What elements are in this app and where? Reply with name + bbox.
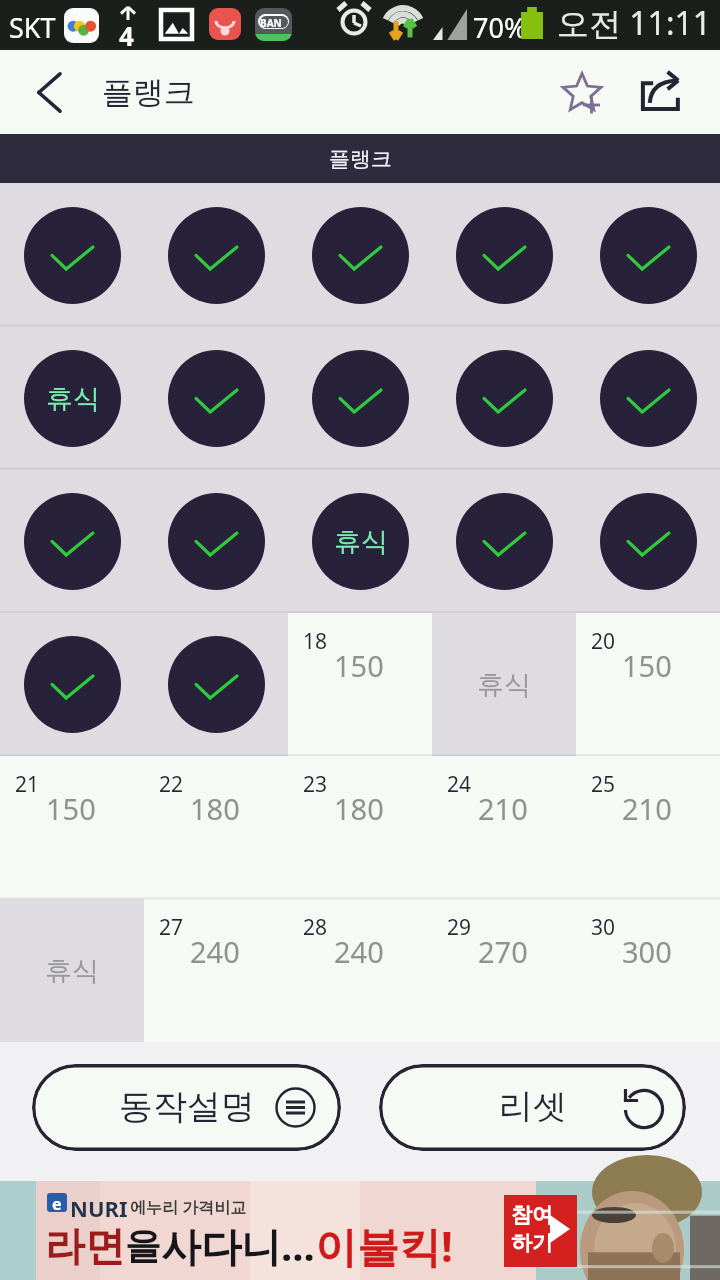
staticText: 휴식 bbox=[477, 668, 531, 702]
button[interactable] bbox=[0, 183, 144, 327]
staticText: 리셋 bbox=[499, 1085, 567, 1128]
staticText: 180 bbox=[190, 789, 240, 828]
button[interactable]: 30 bbox=[576, 899, 720, 1042]
staticText: 휴식 bbox=[46, 382, 100, 416]
button[interactable] bbox=[432, 183, 576, 327]
button[interactable] bbox=[144, 613, 288, 756]
staticText: 300 bbox=[622, 932, 672, 971]
staticText: 70% bbox=[473, 9, 527, 46]
button[interactable]: 동작설명 bbox=[32, 1064, 341, 1151]
staticText: 25 bbox=[591, 770, 616, 799]
staticText: 휴식 bbox=[45, 954, 99, 988]
staticText: 18 bbox=[303, 627, 328, 656]
staticText: 22 bbox=[159, 770, 184, 799]
button[interactable] bbox=[0, 470, 144, 613]
button[interactable]: 휴식 bbox=[288, 470, 432, 613]
staticText: 플랭크 bbox=[102, 73, 195, 112]
staticText: 을 bbox=[125, 1223, 161, 1268]
staticText: NURI bbox=[70, 1193, 128, 1223]
staticText: 라면 bbox=[45, 1221, 125, 1271]
staticText: BAND bbox=[260, 16, 288, 28]
staticText: 27 bbox=[159, 913, 184, 942]
staticText: 270 bbox=[478, 932, 528, 971]
button[interactable] bbox=[144, 470, 288, 613]
button[interactable]: 23 bbox=[288, 756, 432, 899]
button[interactable]: Share bbox=[627, 50, 693, 134]
staticText: 21 bbox=[15, 770, 40, 799]
staticText: e bbox=[52, 1193, 62, 1212]
staticText: 플랭크 bbox=[329, 146, 392, 172]
button[interactable] bbox=[576, 327, 720, 470]
button[interactable]: 24 bbox=[432, 756, 576, 899]
button[interactable]: 22 bbox=[144, 756, 288, 899]
staticText: SKT bbox=[9, 9, 56, 46]
button[interactable]: 리셋 bbox=[379, 1064, 686, 1151]
staticText: 4 bbox=[119, 18, 134, 53]
staticText: 휴식 bbox=[334, 525, 388, 559]
button[interactable]: 휴식 bbox=[432, 613, 576, 756]
staticText: 24 bbox=[447, 770, 472, 799]
button[interactable]: 27 bbox=[144, 899, 288, 1042]
staticText: 180 bbox=[334, 789, 384, 828]
button[interactable]: 28 bbox=[288, 899, 432, 1042]
staticText: 참여 하기 bbox=[511, 1202, 553, 1256]
button[interactable]: Add to favorites bbox=[549, 50, 615, 134]
button[interactable]: 29 bbox=[432, 899, 576, 1042]
staticText: 20 bbox=[591, 627, 616, 656]
button[interactable] bbox=[432, 327, 576, 470]
button[interactable] bbox=[0, 613, 144, 756]
button[interactable] bbox=[432, 470, 576, 613]
staticText: 동작설명 bbox=[119, 1085, 255, 1128]
staticText: 150 bbox=[622, 646, 672, 685]
staticText: 210 bbox=[622, 789, 672, 828]
button[interactable]: Back bbox=[4, 50, 92, 134]
button[interactable]: 휴식 bbox=[0, 899, 144, 1042]
button[interactable]: 18 bbox=[288, 613, 432, 756]
button[interactable] bbox=[144, 183, 288, 327]
staticText: 150 bbox=[334, 646, 384, 685]
staticText: 29 bbox=[447, 913, 472, 942]
button[interactable]: 휴식 bbox=[0, 327, 144, 470]
staticText: 이불킥! bbox=[315, 1217, 453, 1274]
staticText: 240 bbox=[334, 932, 384, 971]
button[interactable]: 20 bbox=[576, 613, 720, 756]
button[interactable] bbox=[288, 327, 432, 470]
staticText: 28 bbox=[303, 913, 328, 942]
button[interactable] bbox=[144, 327, 288, 470]
button[interactable]: 21 bbox=[0, 756, 144, 899]
button[interactable]: Advertisement banner bbox=[0, 1181, 720, 1280]
button[interactable] bbox=[576, 470, 720, 613]
button[interactable]: 25 bbox=[576, 756, 720, 899]
staticText: 23 bbox=[303, 770, 328, 799]
staticText: 오전 11:11 bbox=[557, 1, 712, 45]
button[interactable] bbox=[288, 183, 432, 327]
staticText: 에누리 가격비교 bbox=[130, 1196, 247, 1218]
staticText: 150 bbox=[46, 789, 96, 828]
button[interactable] bbox=[576, 183, 720, 327]
staticText: 30 bbox=[591, 913, 616, 942]
staticText: 사다니... bbox=[161, 1218, 315, 1273]
staticText: 210 bbox=[478, 789, 528, 828]
staticText: 240 bbox=[190, 932, 240, 971]
